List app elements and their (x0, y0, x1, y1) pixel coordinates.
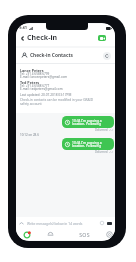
staticText: Delivered ✓✓ (95, 128, 114, 132)
staticText: Delivered ✓✓ (95, 150, 114, 154)
button[interactable]: Video call (98, 35, 106, 41)
button[interactable]: Expand (18, 220, 25, 227)
staticText: SOS (79, 231, 90, 238)
button[interactable]: Keyboard (107, 222, 112, 225)
staticText: Check-in contacts can be modified in you… (20, 98, 94, 106)
button[interactable]: Settings (105, 229, 114, 240)
staticText: 10:34 I'm passing a location. Following (72, 118, 102, 126)
staticText: Ted Peters (20, 80, 40, 85)
button[interactable]: Back (17, 33, 27, 43)
button[interactable]: Check-in (22, 229, 31, 240)
button[interactable]: Alerts (46, 229, 55, 240)
staticText: Tel: +91 4 6588 6799 (20, 72, 50, 76)
staticText: E-mail: lanceepeters@gmail.com (20, 75, 68, 79)
staticText: Tel: +91 4 6588 6777 (20, 84, 50, 88)
staticText: Check-in (27, 33, 58, 43)
button[interactable]: Emoji (99, 220, 105, 226)
staticText: Lance Peters (20, 68, 44, 73)
button[interactable]: 10:34 I'm passing a location. Following (62, 138, 114, 150)
staticText: Check-in Contacts (30, 52, 73, 59)
staticText: 10:34 I'm passing a location. Following (72, 140, 102, 148)
staticText: 9:41 (19, 25, 27, 30)
staticText: Last updated: 20.07.2018 03:17PM (20, 93, 72, 97)
button[interactable]: 10:34 I'm passing a location. Following (62, 116, 114, 128)
staticText: Write message(s) below in 14 words (27, 221, 83, 225)
staticText: 10:12 on 28.6 (20, 133, 39, 137)
staticText: E-mail: tedpeters@gmail.com (20, 87, 63, 91)
button[interactable]: SOS (76, 229, 92, 240)
button[interactable]: Refresh (103, 52, 111, 60)
